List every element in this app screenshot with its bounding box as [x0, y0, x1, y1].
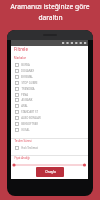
- staticText: Fiyat Aralığı: [14, 156, 30, 160]
- button[interactable]: ALBO BOYALAR: [11, 115, 88, 121]
- staticText: Teslim Süresi: [14, 139, 32, 143]
- button[interactable]: AS BANK: [11, 97, 88, 103]
- staticText: Filtrele: [14, 46, 28, 52]
- staticText: STOP GUBRE: [21, 81, 38, 85]
- staticText: EKREMAL: [21, 75, 33, 79]
- button[interactable]: STANDART ST: [11, 109, 88, 115]
- staticText: DOGANAY: [21, 69, 34, 73]
- button[interactable]: BENSOFTPAR: [11, 121, 88, 127]
- staticText: BENSOFTPAR: [21, 122, 38, 126]
- staticText: ALBO BOYALAR: [21, 116, 41, 120]
- staticText: Aramanızı isteğinize göre: [10, 2, 90, 11]
- staticText: KUSAL: [21, 128, 30, 132]
- button[interactable]: PENA: [11, 92, 88, 98]
- button[interactable]: BURSA: [11, 62, 88, 68]
- staticText: ARAL: [21, 104, 28, 108]
- staticText: Onayla: [45, 170, 56, 174]
- staticText: PENA: [21, 93, 28, 97]
- staticText: BURSA: [21, 63, 30, 67]
- button[interactable]: Hızlı Teslimat: [11, 145, 88, 151]
- staticText: STANDART ST: [21, 110, 38, 114]
- staticText: AS BANK: [21, 98, 33, 102]
- staticText: Markalar: [14, 56, 26, 60]
- button[interactable]: KUSAL: [11, 127, 88, 133]
- button[interactable]: Fiyat aralığı kaydırıcı: [11, 163, 88, 167]
- staticText: Hızlı Teslimat: [21, 146, 38, 150]
- staticText: daraltın: [38, 13, 63, 22]
- staticText: TRENDBIA: [21, 87, 35, 91]
- button[interactable]: STOP GUBRE: [11, 80, 88, 86]
- button[interactable]: Onayla: [36, 167, 64, 177]
- button[interactable]: EKREMAL: [11, 74, 88, 80]
- button[interactable]: ARAL: [11, 103, 88, 109]
- button[interactable]: DOGANAY: [11, 68, 88, 74]
- button[interactable]: TRENDBIA: [11, 86, 88, 92]
